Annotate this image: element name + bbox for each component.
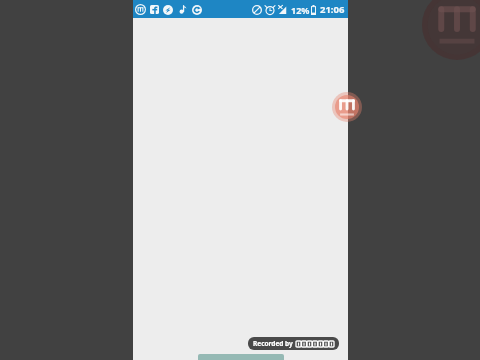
staticText: 12% [291, 4, 310, 16]
staticText: Recorded by [253, 339, 293, 348]
button[interactable] [198, 354, 284, 360]
staticText: 21:06 [320, 3, 345, 16]
button[interactable]: Mobizen recorder [332, 92, 362, 122]
